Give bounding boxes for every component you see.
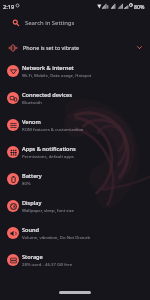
button[interactable]: Connected devices [0,87,150,109]
staticText: Wi-Fi, Mobile, Data usage, Hotspot [22,72,92,78]
staticText: Wallpaper, sleep, font size [22,207,74,213]
staticText: Battery [22,172,42,180]
other: Search [13,20,19,26]
other: Expand [137,45,142,50]
staticText: Search in Settings [25,19,75,27]
button[interactable]: Battery [0,168,150,190]
button[interactable]: Venom [0,114,150,136]
button[interactable]: Display [0,195,150,217]
staticText: 2:19 [3,3,15,11]
staticText: 80% [134,3,145,10]
staticText: Storage [22,253,43,261]
staticText: ROM features & customization [22,126,84,132]
staticText: Phone is set to vibrate [23,44,80,51]
button[interactable]: Search [0,13,150,32]
staticText: Permissions, default apps [22,153,74,159]
button[interactable]: Phone is set to vibrate [0,37,150,58]
staticText: 28% used - 46.37 GB free [22,261,73,267]
button[interactable]: Sound [0,222,150,244]
staticText: Volume, vibration, Do Not Disturb [22,234,91,240]
staticText: Sound [22,226,39,234]
button[interactable]: Storage [0,249,150,271]
staticText: Display [22,199,42,207]
staticText: 80% [22,180,31,186]
staticText: Connected devices [22,91,72,99]
staticText: Bluetooth [22,99,42,105]
button[interactable]: Apps & notifications [0,141,150,163]
staticText: Apps & notifications [22,145,76,153]
button[interactable]: Network & internet [0,60,150,82]
staticText: Venom [22,118,41,126]
staticText: Network & internet [22,64,74,72]
